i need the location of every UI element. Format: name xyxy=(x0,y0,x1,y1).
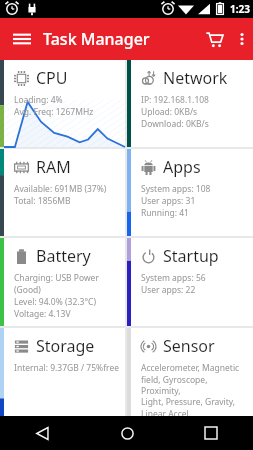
staticText: Task Manager xyxy=(43,28,150,50)
staticText: Sensor xyxy=(163,335,215,357)
button[interactable]: Apps xyxy=(127,149,253,236)
staticText: User apps: 31 xyxy=(141,195,196,207)
staticText: Startup xyxy=(163,245,219,267)
button[interactable]: Network xyxy=(127,60,253,147)
staticText: Loading: 4% xyxy=(14,94,63,106)
staticText: field, Gyroscope, Proximity, xyxy=(141,374,249,396)
staticText: (Good) xyxy=(14,284,41,296)
staticText: Storage xyxy=(36,335,95,357)
button[interactable]: Recent apps xyxy=(169,416,253,450)
staticText: Network xyxy=(163,67,228,89)
button[interactable]: Back xyxy=(0,416,85,450)
staticText: System apps: 108 xyxy=(141,183,211,195)
staticText: IP: 192.168.1.108 xyxy=(141,94,209,106)
staticText: Level: 94.0% (32.3°C) xyxy=(14,296,96,308)
button[interactable]: Battery xyxy=(0,238,125,326)
button[interactable]: Store xyxy=(197,22,231,56)
staticText: Running: 41 xyxy=(141,207,189,219)
staticText: System apps: 56 xyxy=(141,272,206,284)
staticText: Apps xyxy=(163,156,201,178)
staticText: Available: 691MB (37%) xyxy=(14,183,107,195)
staticText: Avg. Freq: 1267MHz xyxy=(14,106,94,118)
button[interactable]: More options xyxy=(231,22,253,56)
button[interactable]: Storage xyxy=(0,328,125,416)
staticText: Upload: 0KB/s xyxy=(141,106,198,118)
staticText: Light, Pressure, Gravity, xyxy=(141,396,236,408)
staticText: Accelerometer, Magnetic xyxy=(141,362,240,374)
staticText: RAM xyxy=(36,156,71,178)
button[interactable]: CPU xyxy=(0,60,125,147)
staticText: Download: 0KB/s xyxy=(141,118,209,130)
staticText: Linear Accel. xyxy=(141,408,192,416)
button[interactable]: Open navigation drawer xyxy=(5,22,39,56)
button[interactable]: Home xyxy=(85,416,169,450)
staticText: User apps: 22 xyxy=(141,284,196,296)
staticText: Internal: 9.37GB / 75%free xyxy=(14,362,120,374)
staticText: Battery xyxy=(36,245,91,267)
button[interactable]: Startup xyxy=(127,238,253,326)
staticText: 1:23 xyxy=(230,2,250,16)
staticText: Charging: USB Power xyxy=(14,272,99,284)
staticText: Voltage: 4.13V xyxy=(14,308,71,320)
staticText: Total: 1856MB xyxy=(14,195,71,207)
button[interactable]: RAM xyxy=(0,149,125,236)
staticText: CPU xyxy=(36,67,68,89)
button[interactable]: Sensor xyxy=(127,328,253,416)
